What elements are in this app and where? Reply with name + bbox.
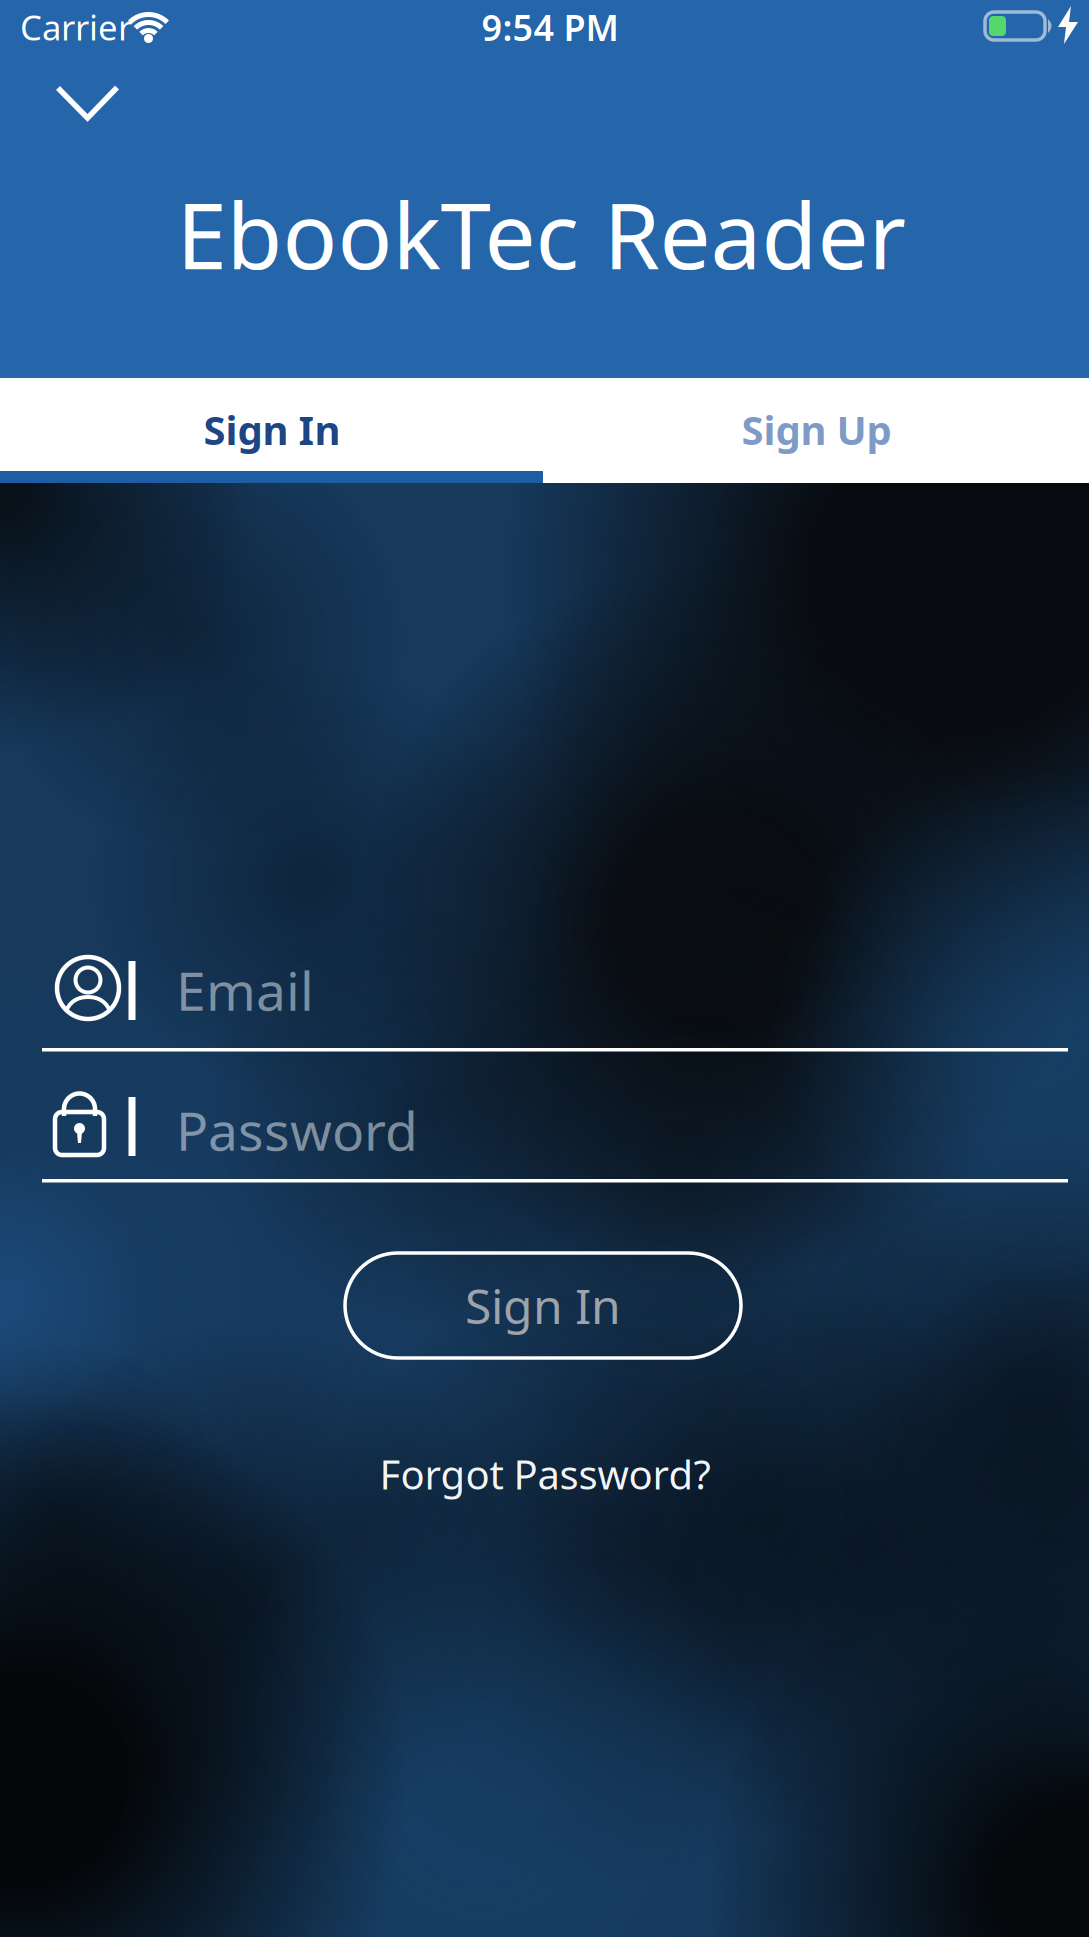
button[interactable] [54, 84, 121, 122]
button[interactable]: Sign In [345, 1253, 741, 1358]
staticText: Sign Up [741, 403, 891, 456]
staticText: Forgot Password? [379, 1447, 710, 1500]
staticText: Carrier [20, 4, 132, 50]
button[interactable]: Sign In [0, 378, 544, 471]
staticText: Email [176, 955, 314, 1025]
staticText: Sign In [465, 1274, 621, 1337]
staticText: 9:54 PM [481, 3, 618, 51]
button[interactable]: Sign Up [544, 378, 1089, 471]
staticText: EbookTec Reader [176, 174, 905, 294]
button[interactable]: Forgot Password? [379, 1447, 710, 1500]
staticText: Sign In [203, 403, 340, 456]
staticText: Password [176, 1095, 418, 1165]
